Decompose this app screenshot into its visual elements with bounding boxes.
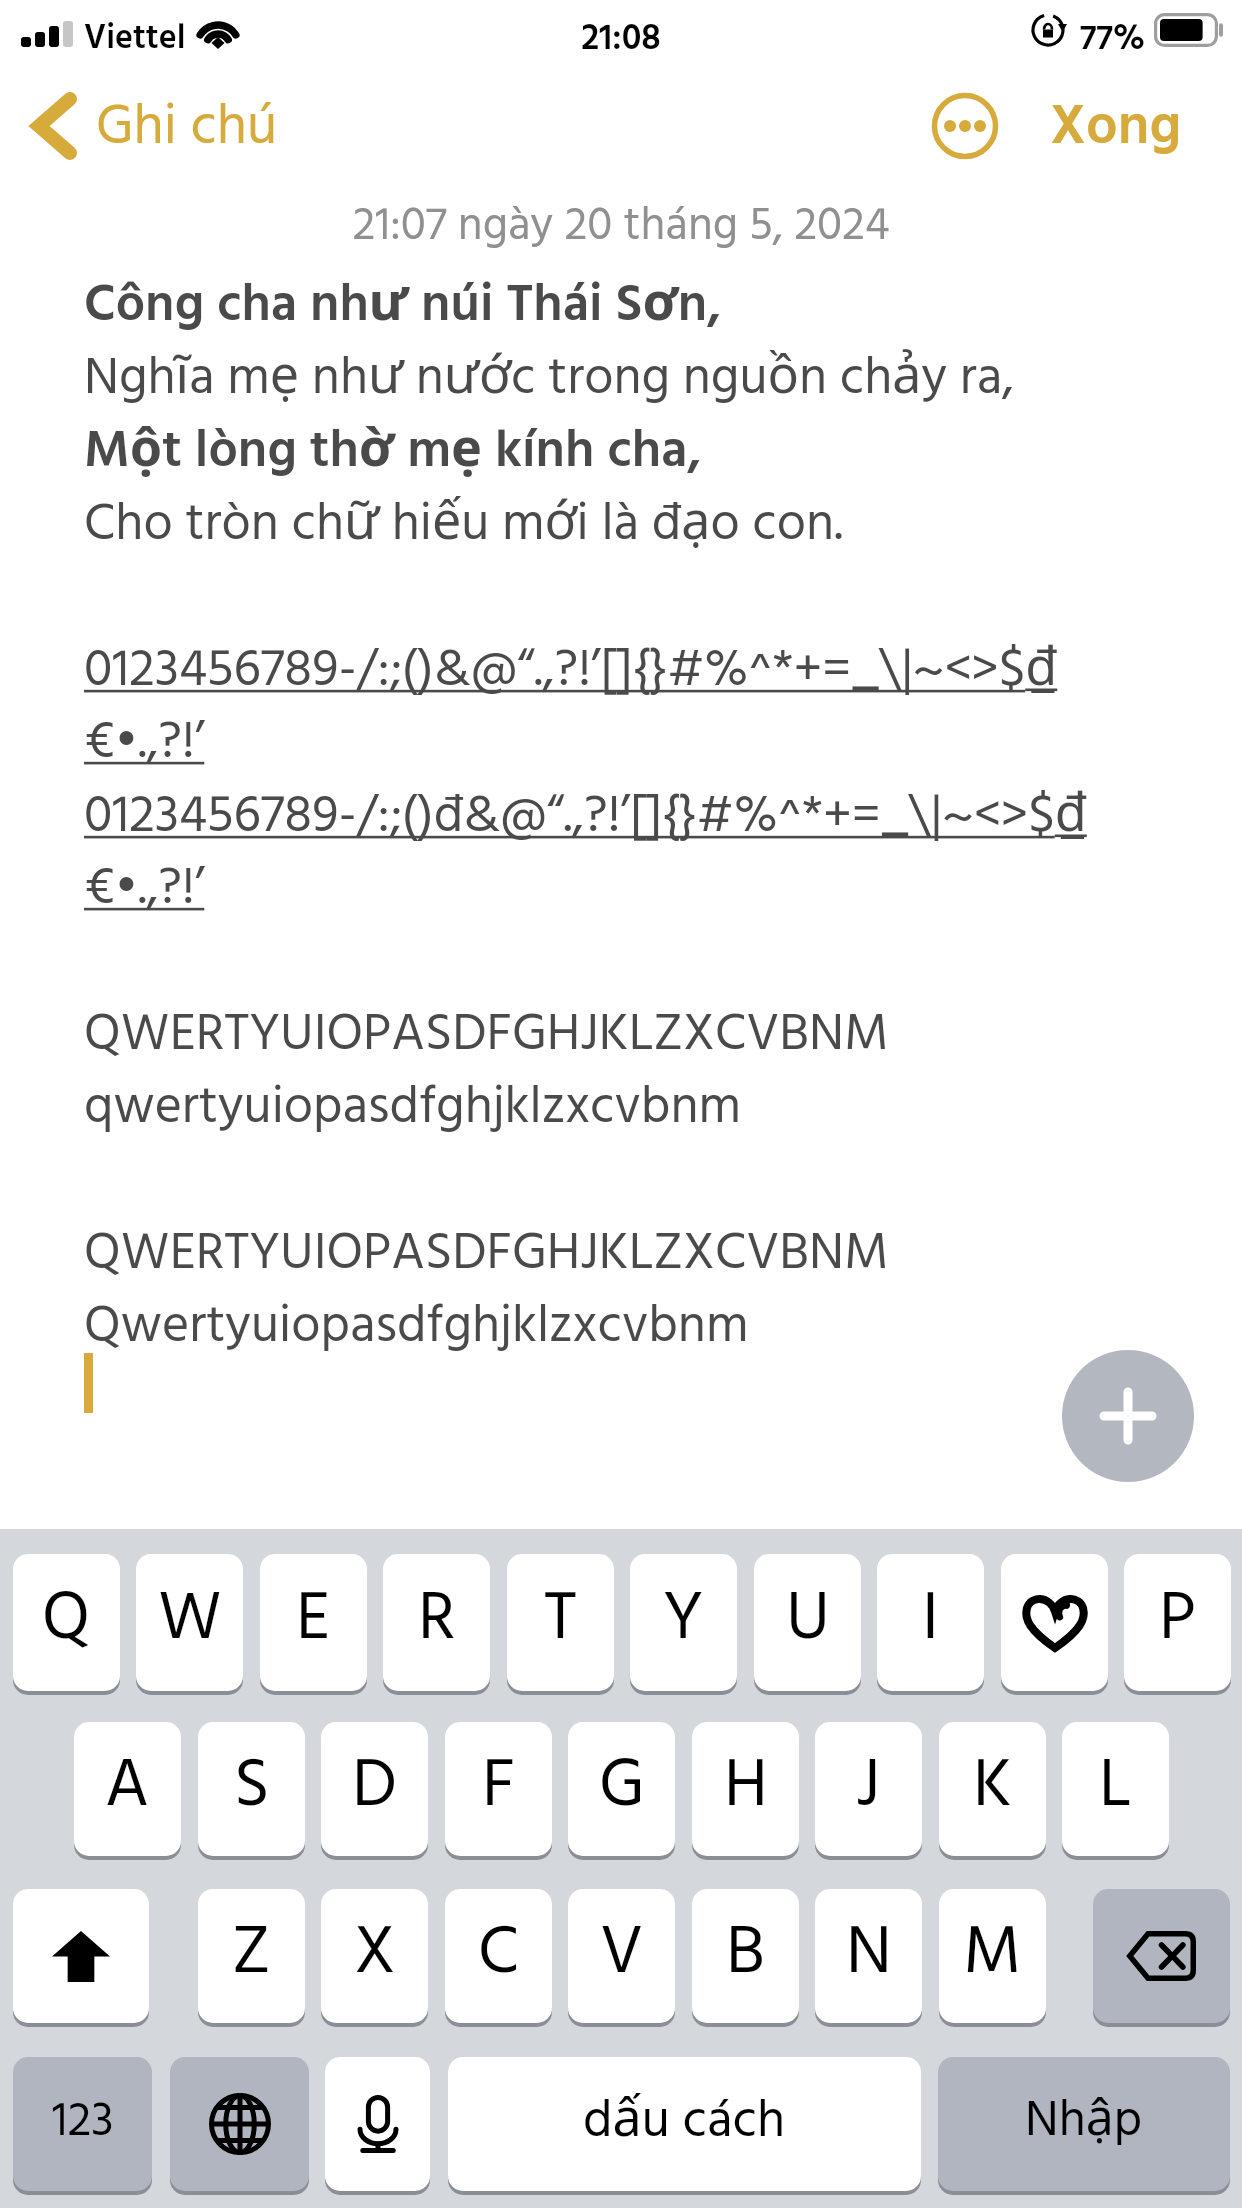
staticText: Một lòng thờ mẹ kính cha, bbox=[84, 410, 702, 494]
staticText: 0123456789-/:;()đ&@“.,?!’[]{}#%^*+=_\|~<… bbox=[84, 775, 1087, 859]
button[interactable]: Voice input bbox=[325, 2057, 430, 2191]
staticText: 77% bbox=[1080, 12, 1146, 68]
button[interactable]: L bbox=[1062, 1722, 1169, 1856]
button[interactable]: C bbox=[445, 1889, 552, 2023]
staticText: QWERTYUIOPASDFGHJKLZXCVBNM bbox=[84, 1213, 889, 1296]
staticText: Z bbox=[232, 1900, 271, 2009]
staticText: A bbox=[105, 1733, 150, 1842]
button[interactable]: N bbox=[815, 1889, 922, 2023]
button[interactable]: Ghi chú bbox=[30, 88, 278, 164]
button[interactable]: U bbox=[754, 1554, 861, 1691]
button[interactable]: M bbox=[939, 1889, 1046, 2023]
staticText: Nghĩa mẹ như nước trong nguồn chảy ra, bbox=[84, 337, 1015, 421]
button[interactable]: Shift bbox=[13, 1889, 149, 2023]
staticText: C bbox=[478, 1900, 519, 2009]
button[interactable]: B bbox=[692, 1889, 799, 2023]
button[interactable]: K bbox=[939, 1722, 1046, 1856]
button[interactable]: dấu cách bbox=[448, 2057, 921, 2191]
staticText: S bbox=[234, 1733, 270, 1842]
button[interactable]: G bbox=[568, 1722, 675, 1856]
button[interactable]: Q bbox=[13, 1554, 120, 1691]
staticText: R bbox=[418, 1566, 456, 1675]
staticText: W bbox=[158, 1566, 222, 1675]
button[interactable]: T bbox=[507, 1554, 614, 1691]
staticText: Viettel bbox=[84, 12, 186, 66]
button[interactable]: A bbox=[74, 1722, 181, 1856]
button[interactable]: X bbox=[321, 1889, 428, 2023]
staticText: I bbox=[922, 1566, 939, 1675]
staticText: P bbox=[1159, 1566, 1197, 1675]
staticText: qwertyuiopasdfghjklzxcvbnm bbox=[84, 1067, 742, 1150]
button[interactable]: Backspace bbox=[1093, 1889, 1230, 2023]
button[interactable]: I bbox=[877, 1554, 984, 1691]
button[interactable]: More options bbox=[927, 88, 1003, 164]
staticText: 21:08 bbox=[0, 11, 1242, 69]
staticText: T bbox=[544, 1566, 577, 1675]
button[interactable]: F bbox=[445, 1722, 552, 1856]
staticText: V bbox=[600, 1900, 644, 2009]
staticText: €•.,?!’ bbox=[84, 702, 205, 785]
button[interactable]: Heart bbox=[1001, 1554, 1108, 1691]
button[interactable]: 123 bbox=[13, 2057, 152, 2191]
button[interactable]: H bbox=[692, 1722, 799, 1856]
button[interactable]: P bbox=[1124, 1554, 1231, 1691]
button[interactable]: Add attachment bbox=[1062, 1350, 1194, 1482]
staticText: X bbox=[354, 1900, 396, 2009]
staticText: L bbox=[1099, 1733, 1132, 1842]
staticText: Cho tròn chữ hiếu mới là đạo con. bbox=[84, 483, 843, 567]
button[interactable]: S bbox=[198, 1722, 305, 1856]
staticText: Nhập bbox=[1025, 2082, 1143, 2163]
button[interactable]: J bbox=[815, 1722, 922, 1856]
staticText: €•.,?!’ bbox=[84, 848, 205, 931]
button[interactable]: Y bbox=[630, 1554, 737, 1691]
staticText: Xong bbox=[1050, 84, 1182, 160]
staticText: U bbox=[786, 1566, 830, 1675]
staticText: G bbox=[599, 1733, 645, 1842]
button[interactable]: Xong bbox=[1050, 88, 1182, 164]
staticText: H bbox=[724, 1733, 768, 1842]
staticText: K bbox=[973, 1733, 1012, 1842]
staticText: dấu cách bbox=[583, 2080, 786, 2164]
staticText: 123 bbox=[52, 2084, 114, 2161]
staticText: Công cha như núi Thái Sơn, bbox=[84, 264, 722, 348]
staticText: J bbox=[856, 1733, 881, 1842]
staticText: Ghi chú bbox=[96, 84, 278, 160]
staticText: 0123456789-/:;()&@“.,?!’[]{}#%^*+=_\|~<>… bbox=[84, 629, 1058, 713]
staticText: F bbox=[482, 1733, 516, 1842]
staticText: Qwertyuiopasdfghjklzxcvbnm bbox=[84, 1286, 749, 1369]
staticText: QWERTYUIOPASDFGHJKLZXCVBNM bbox=[84, 994, 889, 1077]
button[interactable]: D bbox=[321, 1722, 428, 1856]
button[interactable]: E bbox=[260, 1554, 367, 1691]
staticText: B bbox=[726, 1900, 765, 2009]
button[interactable]: R bbox=[383, 1554, 490, 1691]
staticText: Y bbox=[663, 1566, 704, 1675]
button[interactable]: W bbox=[136, 1554, 243, 1691]
button[interactable]: Z bbox=[198, 1889, 305, 2023]
staticText: M bbox=[963, 1900, 1022, 2009]
button[interactable]: Change keyboard bbox=[170, 2057, 309, 2191]
staticText: E bbox=[296, 1566, 331, 1675]
staticText: N bbox=[846, 1900, 892, 2009]
button[interactable]: V bbox=[568, 1889, 675, 2023]
button[interactable]: Nhập bbox=[938, 2057, 1230, 2191]
staticText: D bbox=[352, 1733, 397, 1842]
staticText: Q bbox=[42, 1566, 91, 1675]
staticText: 21:07 ngày 20 tháng 5, 2024 bbox=[0, 190, 1242, 264]
